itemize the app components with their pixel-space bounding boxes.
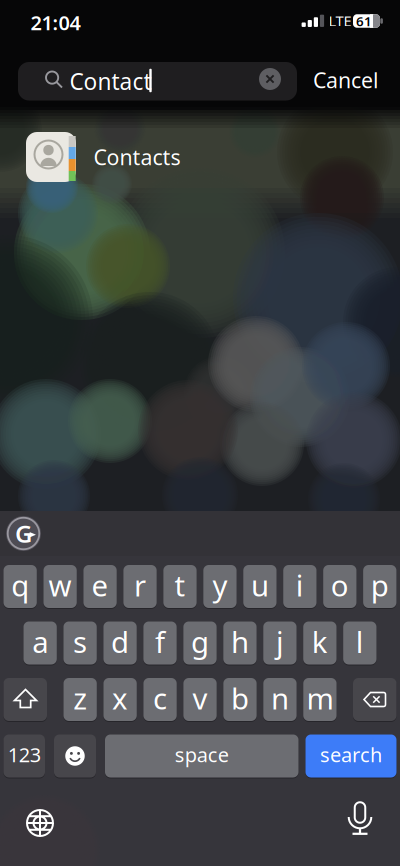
staticText: m bbox=[306, 678, 333, 717]
button[interactable]: v bbox=[183, 677, 217, 722]
button[interactable]: Cancel bbox=[301, 63, 391, 97]
button[interactable]: z bbox=[63, 677, 97, 722]
staticText: i bbox=[296, 565, 304, 604]
staticText: 123 bbox=[8, 741, 41, 768]
button[interactable]: g bbox=[183, 620, 217, 665]
staticText: search bbox=[320, 741, 382, 768]
button[interactable]: a bbox=[23, 620, 57, 665]
staticText: Cancel bbox=[313, 66, 379, 94]
button[interactable]: Delete bbox=[353, 677, 396, 722]
button[interactable]: search bbox=[305, 733, 396, 778]
button[interactable]: 123 bbox=[3, 733, 45, 778]
staticText: 21:04 bbox=[30, 9, 80, 36]
staticText: t bbox=[174, 565, 185, 604]
staticText: y bbox=[212, 565, 227, 604]
button[interactable]: e bbox=[83, 564, 117, 609]
staticText: r bbox=[134, 565, 146, 604]
button[interactable]: Contact bbox=[18, 62, 297, 100]
button[interactable]: f bbox=[143, 620, 177, 665]
button[interactable]: p bbox=[363, 564, 396, 609]
button[interactable]: r bbox=[123, 564, 157, 609]
staticText: q bbox=[11, 565, 29, 604]
staticText: Contact bbox=[69, 66, 151, 96]
staticText: G bbox=[15, 518, 32, 549]
button[interactable]: t bbox=[163, 564, 197, 609]
staticText: u bbox=[251, 565, 269, 604]
button[interactable]: y bbox=[203, 564, 237, 609]
staticText: d bbox=[111, 622, 129, 661]
staticText: o bbox=[331, 565, 349, 604]
button[interactable]: Contacts bbox=[0, 124, 400, 190]
staticText: l bbox=[356, 622, 364, 661]
button[interactable]: Dictate bbox=[343, 802, 377, 840]
button[interactable]: Emoji bbox=[54, 733, 96, 778]
staticText: space bbox=[175, 741, 229, 768]
button[interactable]: q bbox=[3, 564, 37, 609]
button[interactable]: i bbox=[283, 564, 316, 609]
staticText: e bbox=[92, 565, 109, 604]
staticText: j bbox=[276, 622, 284, 661]
button[interactable]: Clear text bbox=[259, 68, 281, 90]
staticText: w bbox=[49, 565, 72, 604]
staticText: k bbox=[312, 622, 328, 661]
staticText: b bbox=[231, 678, 249, 717]
staticText: a bbox=[32, 622, 48, 661]
staticText: 61 bbox=[356, 12, 372, 30]
button[interactable]: space bbox=[105, 733, 298, 778]
button[interactable]: Grammarly bbox=[5, 515, 41, 551]
button[interactable]: Next keyboard bbox=[23, 806, 57, 840]
button[interactable]: w bbox=[43, 564, 77, 609]
button[interactable]: x bbox=[103, 677, 137, 722]
button[interactable]: h bbox=[223, 620, 257, 665]
staticText: g bbox=[191, 622, 209, 661]
button[interactable]: u bbox=[243, 564, 277, 609]
button[interactable]: m bbox=[303, 677, 337, 722]
staticText: v bbox=[192, 678, 207, 717]
button[interactable]: n bbox=[263, 677, 297, 722]
button[interactable]: s bbox=[63, 620, 97, 665]
button[interactable]: Shift bbox=[3, 677, 47, 722]
button[interactable]: c bbox=[143, 677, 177, 722]
button[interactable]: b bbox=[223, 677, 257, 722]
staticText: x bbox=[112, 678, 128, 717]
button[interactable]: d bbox=[103, 620, 137, 665]
staticText: LTE bbox=[328, 11, 351, 31]
staticText: f bbox=[155, 622, 165, 661]
staticText: z bbox=[73, 678, 87, 717]
staticText: s bbox=[73, 622, 87, 661]
staticText: n bbox=[271, 678, 289, 717]
button[interactable]: j bbox=[263, 620, 297, 665]
button[interactable]: o bbox=[323, 564, 356, 609]
staticText: Contacts bbox=[93, 143, 180, 171]
staticText: p bbox=[371, 565, 389, 604]
staticText: c bbox=[153, 678, 167, 717]
button[interactable]: l bbox=[343, 620, 376, 665]
staticText: h bbox=[231, 622, 249, 661]
button[interactable]: k bbox=[303, 620, 336, 665]
